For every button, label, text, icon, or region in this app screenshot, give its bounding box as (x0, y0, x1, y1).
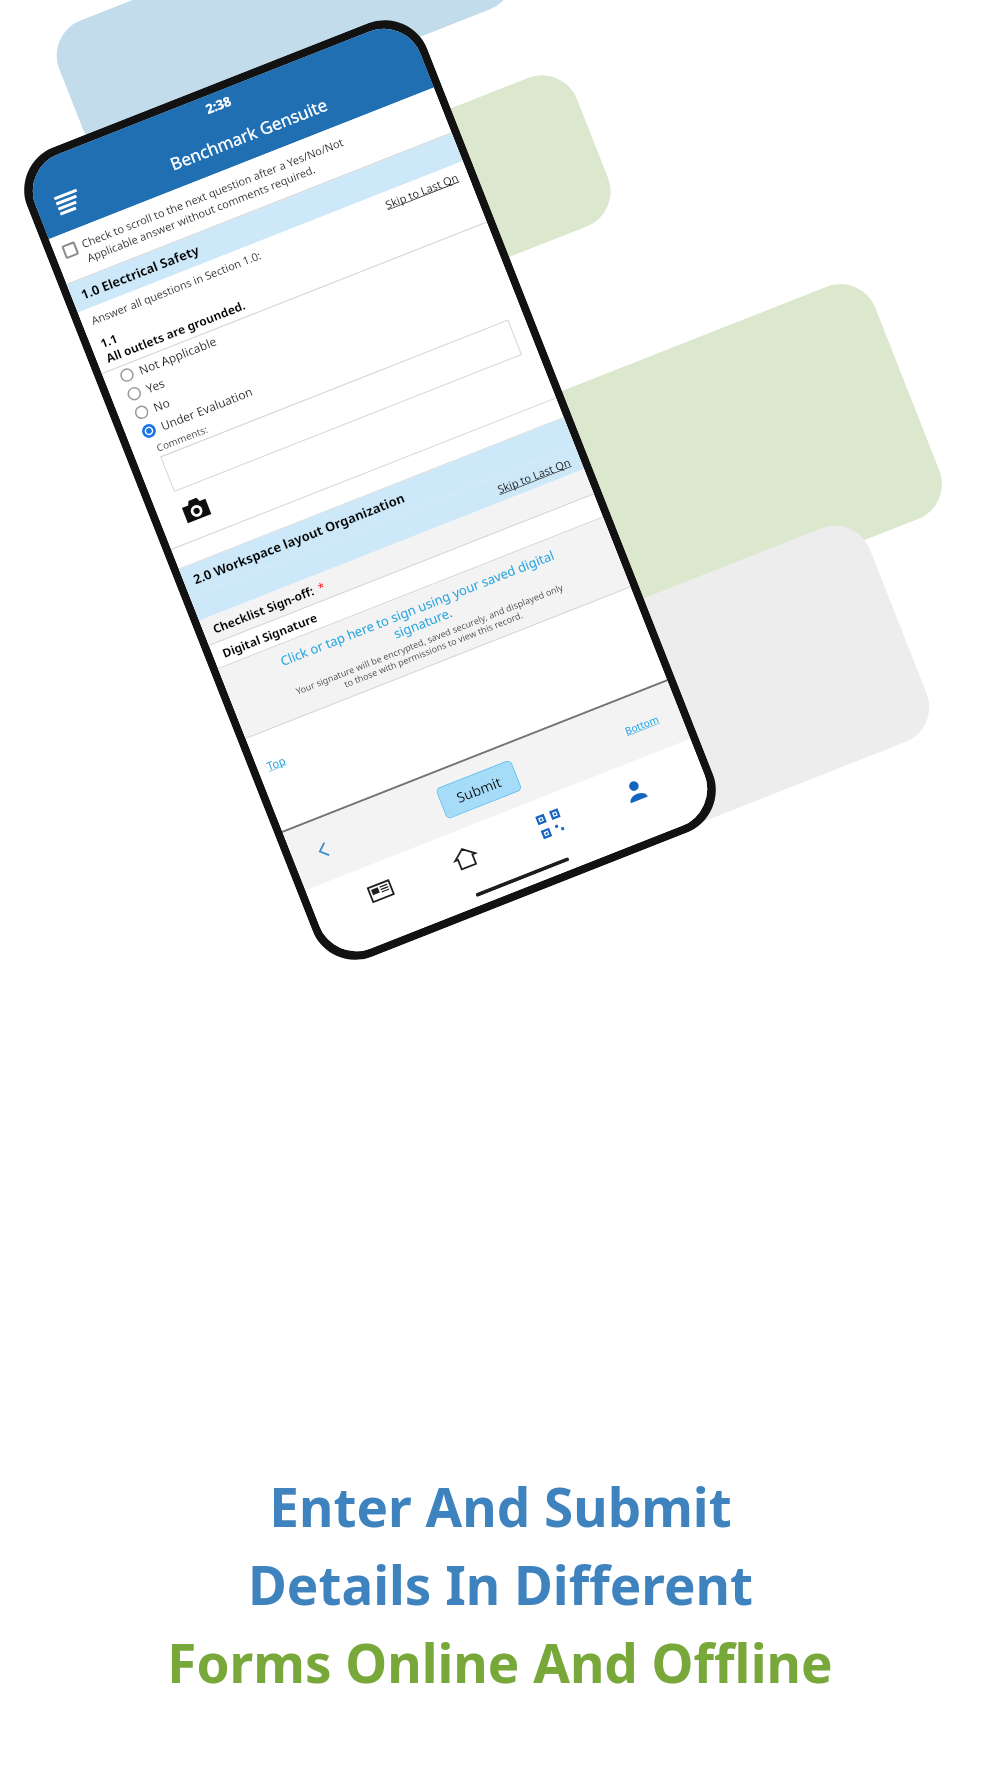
button[interactable] (160, 319, 522, 492)
staticText: Your signature will be encrypted, saved … (293, 580, 569, 708)
button[interactable]: Take photo (178, 491, 214, 527)
button[interactable]: Skip to Last Qn (495, 454, 573, 497)
staticText: Enter And Submit (269, 1470, 732, 1542)
button[interactable]: Top (264, 752, 288, 773)
button[interactable]: Profile (607, 762, 664, 819)
staticText: Forms Online And Offline (167, 1626, 833, 1698)
button[interactable]: Skip to Last Qn (383, 169, 461, 212)
staticText: Answer all questions in Section 1.0: (89, 247, 264, 328)
staticText: Details In Different (248, 1548, 753, 1620)
staticText: All outlets are grounded. (103, 296, 248, 366)
button[interactable]: No (117, 260, 509, 430)
button[interactable]: Click or tap here to sign using your sav… (218, 517, 630, 738)
button[interactable]: Under Evaluation (124, 278, 516, 449)
staticText: 1.0 Electrical Safety (78, 241, 202, 303)
staticText: Click or tap here to sign using your sav… (277, 546, 562, 684)
button[interactable]: 2.0 Workspace layout Organization (179, 418, 575, 597)
staticText: * (315, 578, 328, 595)
staticText: Check to scroll to the next question aft… (79, 134, 351, 265)
staticText: 1.1 (98, 329, 120, 351)
button[interactable]: Submit (435, 759, 523, 820)
button[interactable]: Check to scroll to the next question aft… (49, 88, 452, 284)
staticText: Benchmark Gensuite (167, 93, 331, 175)
staticText: No (151, 394, 172, 415)
staticText: Checklist Sign-off: (210, 582, 316, 637)
staticText: 2.0 Workspace layout Organization (190, 489, 407, 588)
button[interactable]: Previous (306, 832, 342, 868)
staticText: Not Applicable (136, 332, 219, 378)
staticText: Submit (453, 772, 504, 807)
staticText: Digital Signature (220, 609, 319, 661)
staticText: Yes (143, 374, 167, 396)
button[interactable]: 1.0 Electrical Safety (67, 133, 463, 313)
button[interactable]: Bottom (617, 706, 666, 743)
button[interactable]: Home (437, 829, 494, 886)
staticText: 2:38 (203, 92, 234, 118)
button[interactable]: Menu (46, 181, 93, 228)
button[interactable]: Yes (109, 241, 502, 411)
button[interactable]: Scan (522, 795, 579, 852)
button[interactable]: News (352, 862, 409, 919)
staticText: Under Evaluation (158, 383, 255, 434)
staticText: Comments: (154, 422, 210, 455)
button[interactable]: Not Applicable (102, 222, 494, 393)
staticText: Bottom (623, 712, 661, 738)
